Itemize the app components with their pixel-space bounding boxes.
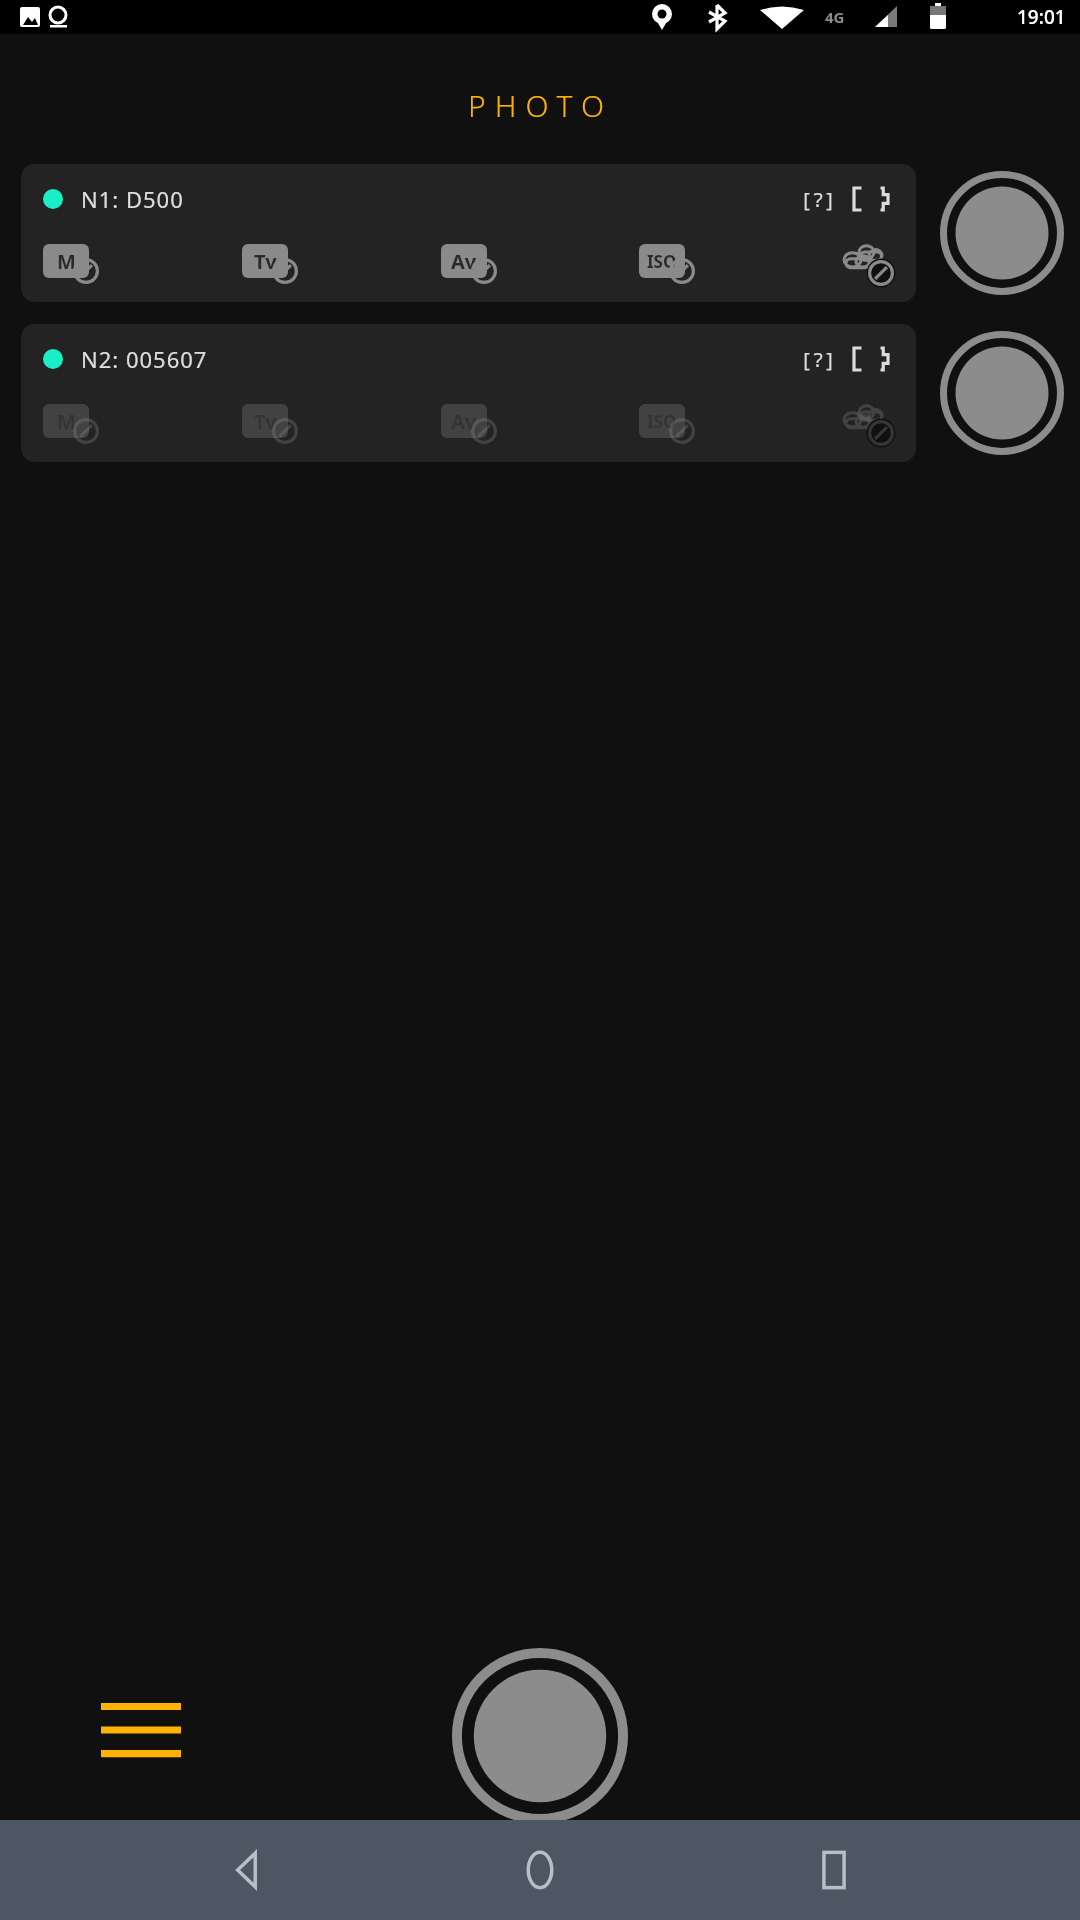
button[interactable]: ISO <box>639 400 695 442</box>
staticText: M <box>57 408 76 435</box>
button[interactable]: Shutter <box>445 1646 635 1826</box>
button[interactable]: N1: D500 <box>21 164 916 302</box>
button[interactable]: Recents <box>786 1822 882 1918</box>
staticText: [?] <box>800 186 836 213</box>
button[interactable]: Home <box>492 1822 588 1918</box>
button[interactable]: N2: 005607 <box>21 324 916 462</box>
staticText: M <box>57 248 76 275</box>
button[interactable]: Av <box>441 240 497 282</box>
staticText: PHOTO <box>468 85 613 126</box>
staticText: Tv <box>254 248 277 275</box>
button[interactable]: Menu <box>98 1692 184 1768</box>
staticText: N1: D500 <box>81 184 184 214</box>
staticText: ISO <box>647 250 677 273</box>
staticText: 19:01 <box>1017 4 1066 30</box>
button[interactable]: Tv <box>242 240 298 282</box>
button[interactable]: Tv <box>242 400 298 442</box>
button[interactable]: M <box>43 240 99 282</box>
button[interactable]: M <box>43 400 99 442</box>
staticText: ISO <box>647 410 677 433</box>
button[interactable]: Cloud upload disabled <box>838 400 894 442</box>
button[interactable]: Cloud upload disabled <box>838 240 894 282</box>
staticText: 4G <box>825 7 845 27</box>
button[interactable]: Shutter <box>938 169 1066 297</box>
button[interactable]: Av <box>441 400 497 442</box>
staticText: [?] <box>800 346 836 373</box>
staticText: Tv <box>254 408 277 435</box>
button[interactable]: Shutter <box>938 329 1066 457</box>
staticText: Av <box>451 248 477 275</box>
button[interactable]: Back <box>198 1822 294 1918</box>
button[interactable]: ISO <box>639 240 695 282</box>
staticText: N2: 005607 <box>81 344 208 374</box>
staticText: Av <box>451 408 477 435</box>
